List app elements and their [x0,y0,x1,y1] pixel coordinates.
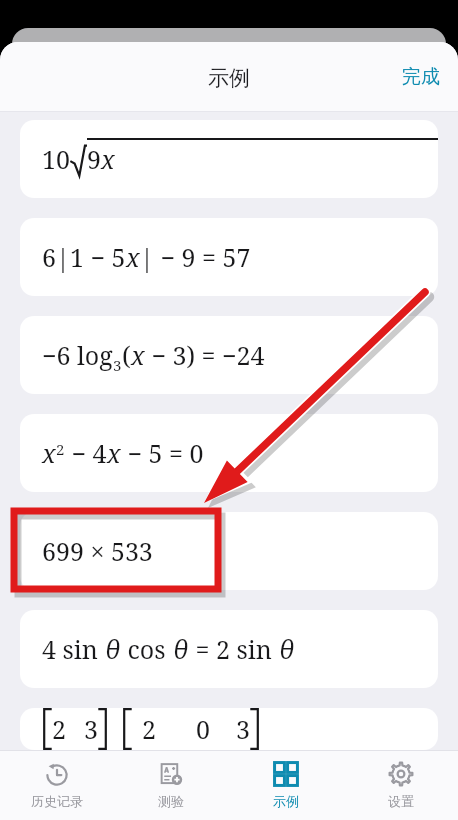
staticText: 设置 [388,793,414,809]
staticText: − 4 [65,436,107,470]
staticText: 3 [236,712,250,746]
staticText: 6|1 − 5 [42,240,126,274]
button[interactable]: −6 log [20,316,438,394]
staticText: θ [173,632,189,666]
button[interactable]: 设置 [343,751,458,820]
staticText: x [126,240,140,274]
staticText: x [107,436,121,470]
button[interactable]: x [20,414,438,492]
staticText: x [42,436,56,470]
staticText: 2 [142,712,156,746]
staticText: 完成 [402,65,440,89]
staticText: | − 9 = 57 [140,240,251,274]
staticText: 2 [56,439,65,459]
button[interactable]: 6|1 − 5 [20,218,438,296]
staticText: 4 sin [42,632,105,666]
staticText: = 2 sin [189,632,279,666]
staticText: 10 [42,142,70,176]
button[interactable]: 10 [20,120,438,198]
staticText: 3 [84,712,98,746]
staticText: 0 [196,712,210,746]
staticText: 699 × 533 [42,534,153,568]
button[interactable]: 2 [20,708,438,750]
staticText: 示例 [208,65,250,91]
button[interactable]: 示例 [228,751,343,820]
staticText: 9 [87,142,101,176]
button[interactable]: 历史记录 [0,751,114,820]
button[interactable]: 4 sin [20,610,438,688]
staticText: − 5 = 0 [121,436,204,470]
staticText: 历史记录 [31,793,83,809]
staticText: −6 log [42,338,113,372]
staticText: 2 [52,712,66,746]
staticText: cos [121,632,173,666]
staticText: 测验 [158,793,184,809]
button[interactable]: 完成 [384,55,458,99]
button[interactable]: 699 × 533 [20,512,438,590]
staticText: θ [279,632,295,666]
staticText: x [101,142,115,176]
staticText: θ [105,632,121,666]
staticText: − 3) = −24 [145,338,265,372]
staticText: 示例 [273,793,299,809]
button[interactable]: 测验 [114,751,228,820]
staticText: 3 [113,355,122,375]
staticText: x [131,338,145,372]
staticText: ( [122,338,131,372]
